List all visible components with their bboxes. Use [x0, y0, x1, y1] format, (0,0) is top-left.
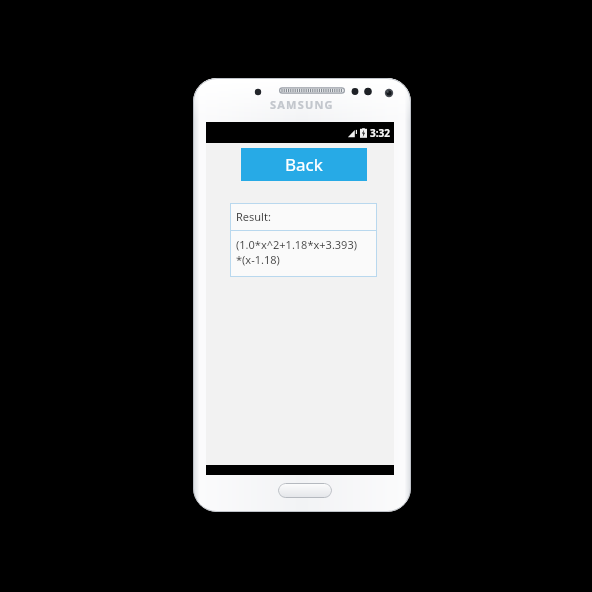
staticText: SAMSUNG	[270, 97, 334, 112]
button[interactable]: Back	[241, 148, 367, 181]
staticText: Result:	[236, 209, 271, 224]
button[interactable]: Home	[278, 483, 332, 498]
staticText: 3:32	[370, 126, 390, 140]
staticText: (1.0*x^2+1.18*x+3.393) *(x-1.18)	[236, 237, 357, 267]
staticText: Back	[285, 153, 323, 176]
